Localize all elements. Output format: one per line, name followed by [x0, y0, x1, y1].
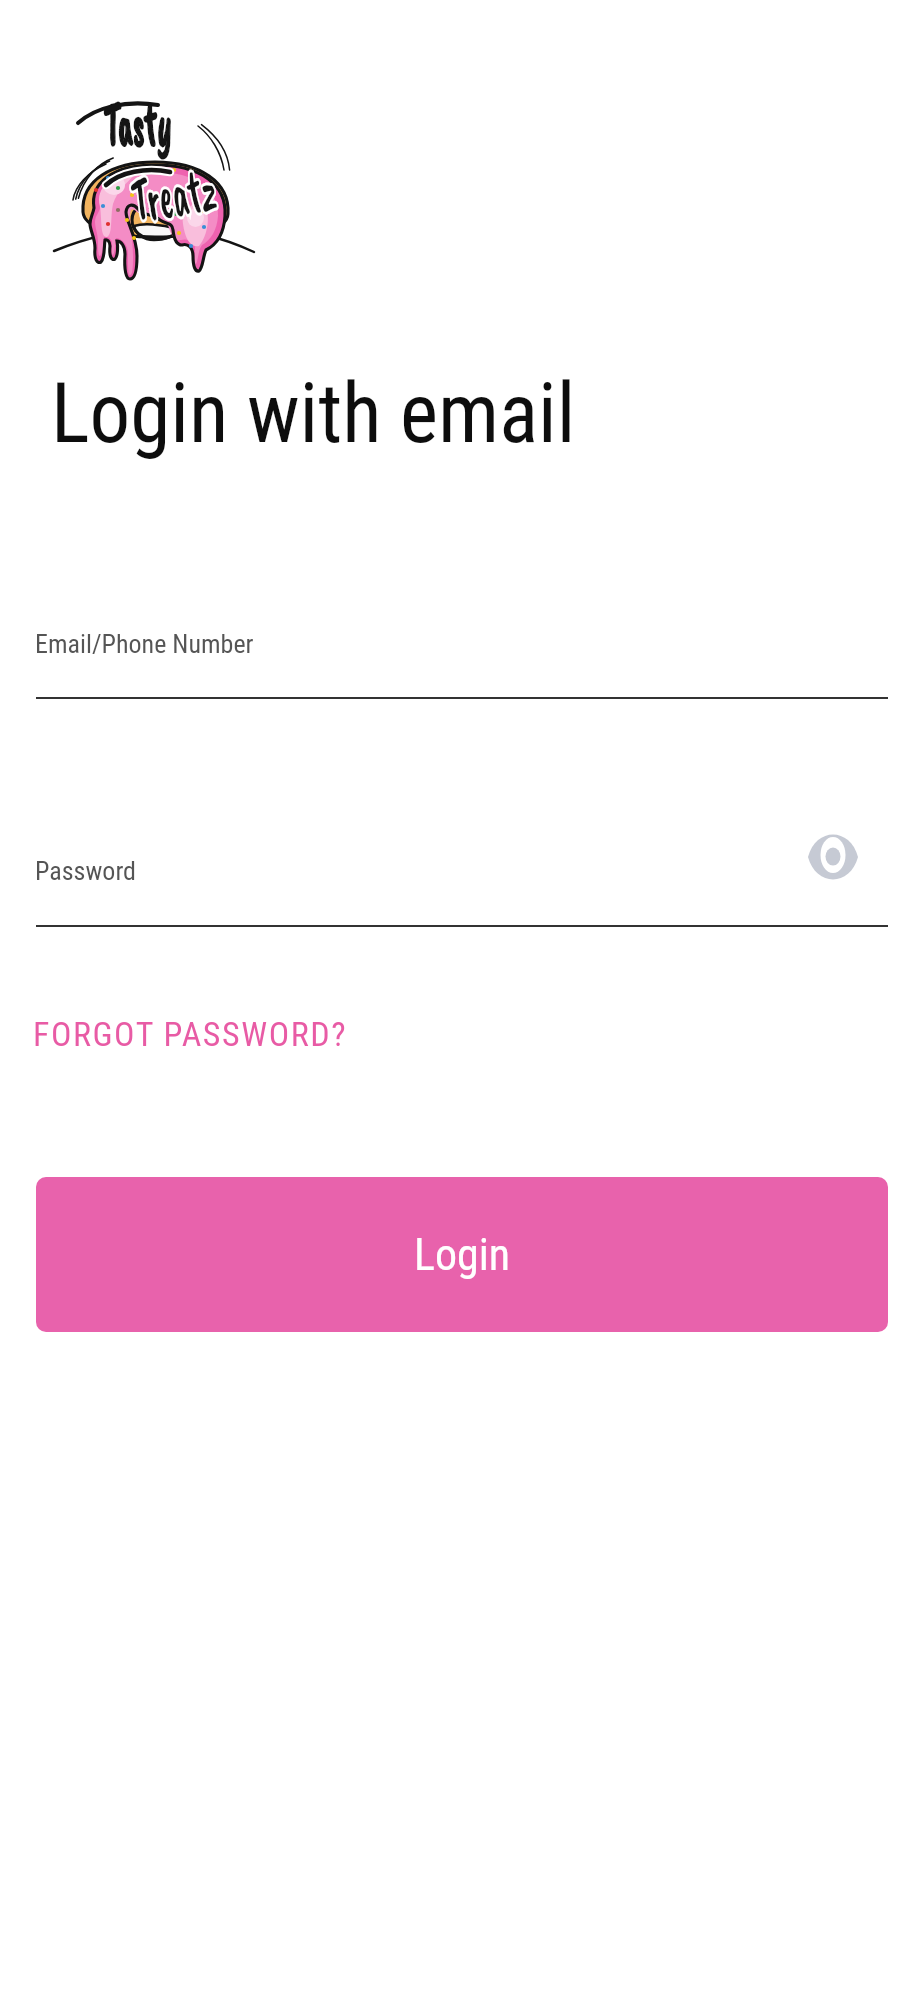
- button[interactable]: FORGOT PASSWORD?: [33, 1014, 348, 1054]
- button[interactable]: Password: [36, 839, 888, 927]
- button[interactable]: Email/Phone Number: [36, 612, 888, 699]
- staticText: Treatz: [126, 149, 221, 239]
- staticText: Login with email: [51, 364, 575, 462]
- staticText: Password: [35, 856, 136, 886]
- button[interactable]: Show password: [799, 823, 866, 890]
- staticText: Tasty: [103, 84, 173, 165]
- staticText: Login: [414, 1229, 511, 1281]
- staticText: Email/Phone Number: [35, 629, 254, 659]
- staticText: Treatz: [126, 149, 221, 239]
- button[interactable]: Login: [36, 1177, 888, 1332]
- staticText: FORGOT PASSWORD?: [33, 1014, 348, 1054]
- staticText: Tasty: [103, 84, 173, 165]
